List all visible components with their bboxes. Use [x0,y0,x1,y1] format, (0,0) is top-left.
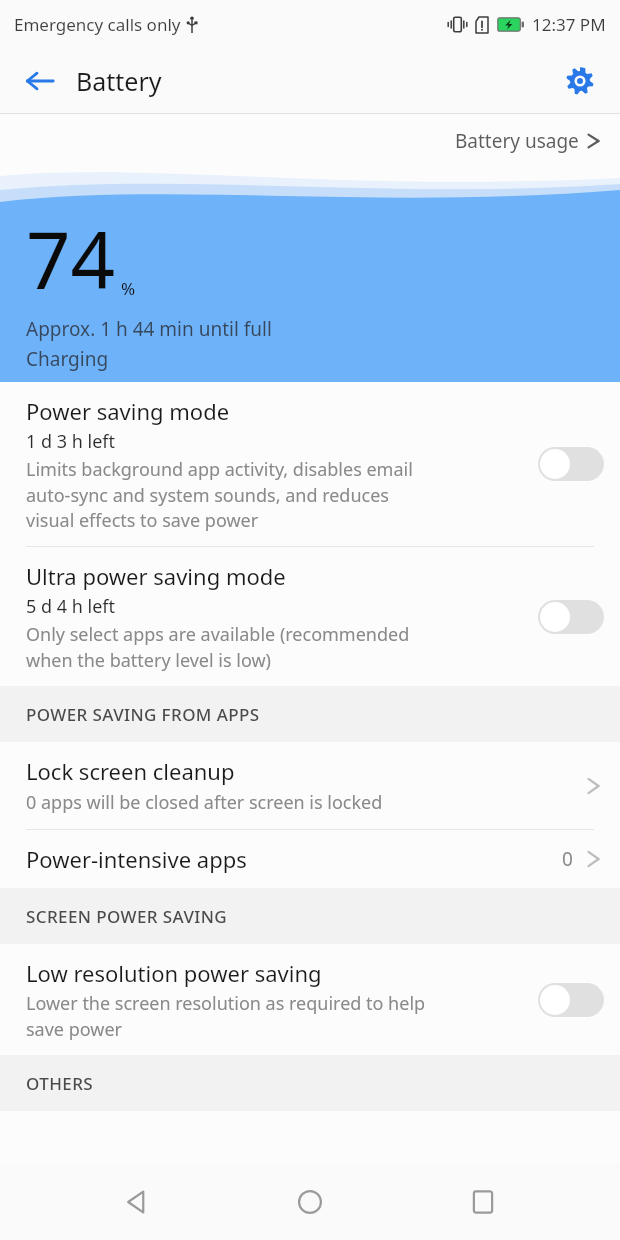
staticText: Emergency calls only [14,13,181,36]
button[interactable]: Power saving mode [0,382,620,546]
staticText: % [121,277,136,300]
button[interactable]: Home [274,1166,346,1238]
button[interactable]: Back [101,1166,173,1238]
staticText: Approx. 1 h 44 min until full [26,316,272,342]
staticText: 0 [562,846,573,872]
staticText: Low resolution power saving [26,958,322,988]
staticText: Only select apps are available (recommen… [26,622,410,672]
staticText: OTHERS [26,1072,94,1095]
staticText: Lock screen cleanup [26,756,235,786]
button[interactable]: Ultra power saving mode [0,547,620,686]
staticText: Battery [76,64,162,98]
button[interactable]: Low resolution power saving [0,944,620,1055]
button[interactable]: Toggle [538,447,604,481]
staticText: SCREEN POWER SAVING [26,905,228,928]
staticText: 1 d 3 h left [26,429,115,454]
staticText: Power saving mode [26,396,230,426]
button[interactable]: Toggle [538,600,604,634]
button[interactable]: Settings [554,55,606,107]
staticText: Ultra power saving mode [26,561,286,591]
staticText: 12:37 PM [532,13,606,36]
button[interactable]: Lock screen cleanup [0,742,620,829]
staticText: Battery usage [455,128,579,154]
staticText: Limits background app activity, disables… [26,457,413,532]
button[interactable]: Back [14,55,66,107]
button[interactable]: Toggle [538,983,604,1017]
button[interactable]: Recent apps [447,1166,519,1238]
staticText: Charging [26,346,109,372]
button[interactable]: Power-intensive apps [0,830,620,888]
button[interactable]: Battery usage [449,122,606,160]
staticText: 5 d 4 h left [26,594,115,619]
staticText: POWER SAVING FROM APPS [26,703,260,726]
staticText: Power-intensive apps [26,844,247,874]
staticText: Lower the screen resolution as required … [26,991,426,1041]
staticText: 0 apps will be closed after screen is lo… [26,790,383,815]
staticText: 74 [26,206,116,312]
